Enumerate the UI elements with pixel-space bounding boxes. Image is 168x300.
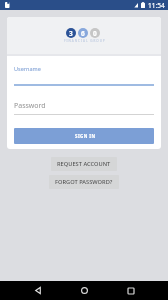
- button[interactable]: Home: [75, 281, 94, 300]
- staticText: 3: [69, 29, 73, 38]
- staticText: 6: [81, 29, 85, 38]
- staticText: 11:54: [148, 1, 165, 10]
- button[interactable]: REQUEST ACCOUNT: [51, 157, 117, 171]
- button[interactable]: FORGOT PASSWORD?: [49, 175, 119, 189]
- staticText: Username: [14, 65, 41, 72]
- staticText: 0: [93, 29, 97, 38]
- button[interactable]: Recent apps: [121, 281, 140, 300]
- staticText: SIGN IN: [75, 133, 96, 139]
- button[interactable]: SIGN IN: [14, 128, 154, 144]
- staticText: FORGOT PASSWORD?: [55, 178, 113, 186]
- staticText: REQUEST ACCOUNT: [57, 160, 111, 168]
- button[interactable]: Back: [28, 281, 47, 300]
- staticText: Password: [14, 101, 46, 111]
- staticText: FINANCIAL GROUP: [64, 39, 106, 43]
